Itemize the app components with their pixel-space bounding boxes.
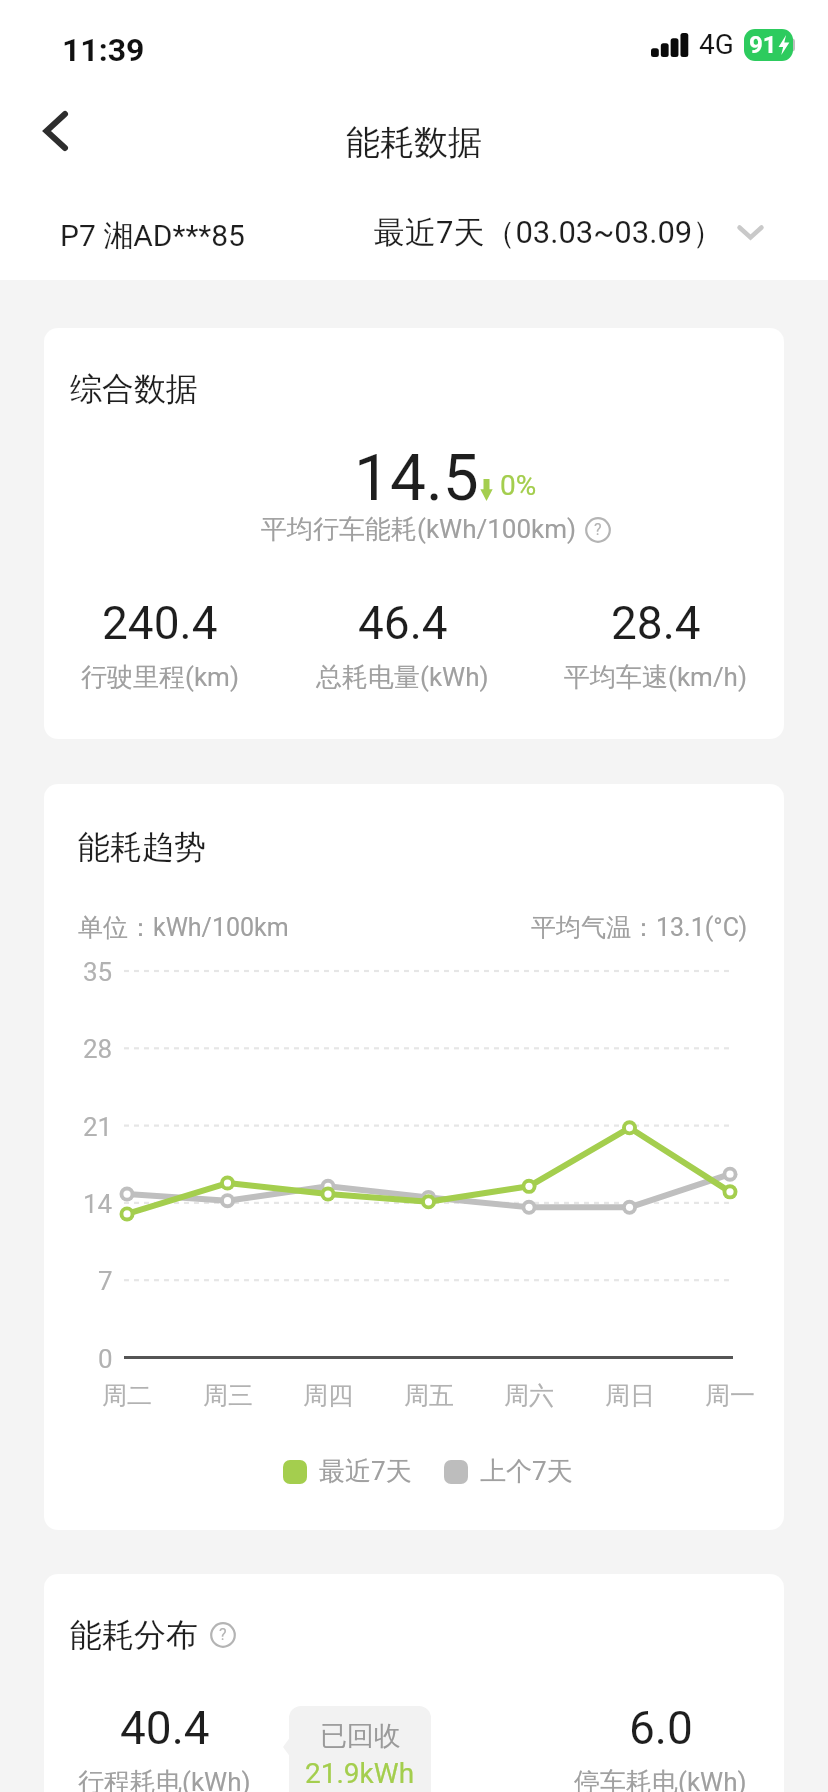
button[interactable]: Help bbox=[210, 1622, 236, 1648]
staticText: 240.4 bbox=[102, 596, 218, 650]
staticText: 最近7天（03.03~03.09） bbox=[374, 213, 724, 252]
staticText: 周一 bbox=[705, 1380, 755, 1411]
button[interactable]: Back bbox=[24, 100, 86, 162]
staticText: ? bbox=[219, 1625, 227, 1644]
staticText: 总耗电量(kWh) bbox=[316, 661, 489, 694]
staticText: 最近7天 bbox=[319, 1455, 412, 1488]
staticText: 46.4 bbox=[358, 596, 448, 650]
staticText: 周日 bbox=[605, 1380, 655, 1411]
staticText: 平均车速(km/h) bbox=[564, 661, 747, 694]
staticText: 综合数据 bbox=[70, 369, 198, 409]
staticText: 周二 bbox=[102, 1380, 152, 1411]
staticText: 11:39 bbox=[62, 31, 145, 69]
staticText: ? bbox=[594, 520, 602, 539]
staticText: 已回收 bbox=[320, 1719, 401, 1753]
staticText: 上个7天 bbox=[480, 1455, 573, 1488]
staticText: 7 bbox=[98, 1266, 113, 1296]
staticText: 周三 bbox=[203, 1380, 253, 1411]
staticText: 单位：kWh/100km bbox=[78, 912, 289, 943]
staticText: 14 bbox=[83, 1189, 113, 1219]
staticText: 行程耗电(kWh) bbox=[78, 1766, 251, 1792]
staticText: 40.4 bbox=[120, 1701, 210, 1755]
staticText: 周六 bbox=[504, 1380, 554, 1411]
staticText: 35 bbox=[83, 957, 113, 987]
staticText: 能耗趋势 bbox=[78, 827, 206, 867]
staticText: 91 bbox=[749, 31, 777, 59]
staticText: 21 bbox=[83, 1112, 113, 1142]
staticText: 平均行车能耗(kWh/100km) bbox=[261, 513, 577, 546]
staticText: 4G bbox=[699, 28, 734, 61]
staticText: 28 bbox=[83, 1034, 113, 1064]
staticText: 行驶里程(km) bbox=[81, 661, 239, 694]
staticText: 28.4 bbox=[611, 596, 701, 650]
staticText: 6.0 bbox=[629, 1701, 693, 1755]
staticText: 能耗数据 bbox=[346, 121, 482, 164]
staticText: 0 bbox=[98, 1344, 113, 1374]
button[interactable]: Help bbox=[585, 517, 611, 543]
staticText: 0% bbox=[500, 469, 537, 502]
staticText: 14.5 bbox=[354, 441, 479, 516]
staticText: 周五 bbox=[404, 1380, 454, 1411]
staticText: 周四 bbox=[303, 1380, 353, 1411]
staticText: 21.9kWh bbox=[305, 1757, 415, 1790]
staticText: 停车耗电(kWh) bbox=[574, 1766, 747, 1792]
button[interactable]: 最近7天（03.03~03.09） bbox=[374, 213, 763, 252]
staticText: P7 湘AD***85 bbox=[60, 217, 245, 255]
staticText: 能耗分布 bbox=[70, 1615, 198, 1655]
staticText: 平均气温：13.1(°C) bbox=[531, 912, 748, 943]
